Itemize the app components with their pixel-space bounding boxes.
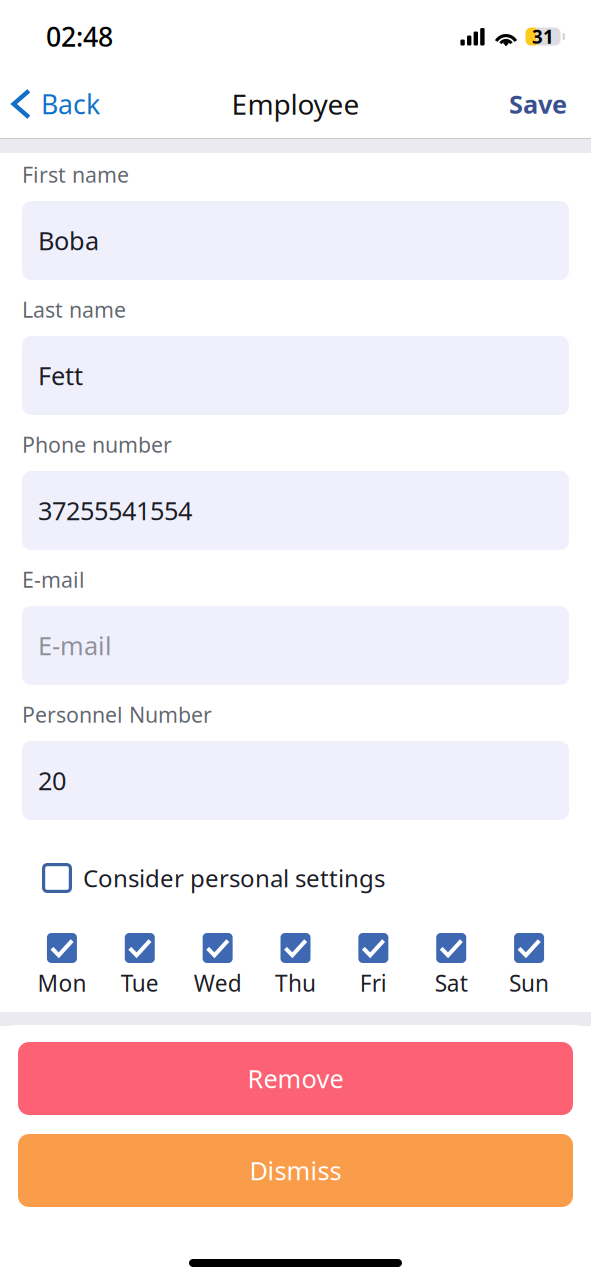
staticText: Fri — [360, 968, 387, 998]
button[interactable]: Sat — [412, 933, 490, 994]
staticText: Back — [41, 86, 100, 122]
staticText: Save — [509, 87, 567, 121]
staticText: E-mail — [22, 565, 85, 594]
staticText: Employee — [231, 85, 359, 123]
staticText: Sat — [435, 968, 468, 998]
button[interactable]: Save — [485, 76, 591, 132]
button[interactable]: Wed — [179, 933, 257, 994]
button[interactable]: Consider personal settings — [22, 863, 569, 893]
staticText: Consider personal settings — [83, 862, 385, 894]
button[interactable]: Fri — [334, 933, 412, 994]
staticText: Wed — [194, 968, 242, 998]
button[interactable]: Sun — [490, 933, 568, 994]
button[interactable]: Mon — [23, 933, 101, 994]
button[interactable]: Remove — [18, 1042, 573, 1115]
staticText: Boba — [38, 224, 99, 257]
staticText: Last name — [22, 295, 126, 324]
staticText: First name — [22, 160, 129, 189]
staticText: Remove — [247, 1062, 343, 1095]
staticText: Phone number — [22, 430, 172, 459]
staticText: Mon — [37, 968, 86, 998]
staticText: 20 — [38, 764, 66, 797]
staticText: Tue — [121, 968, 159, 998]
staticText: Thu — [275, 968, 316, 998]
staticText: Dismiss — [249, 1154, 341, 1187]
button[interactable]: Tue — [101, 933, 179, 994]
staticText: Fett — [38, 359, 83, 392]
button[interactable]: Dismiss — [18, 1134, 573, 1207]
staticText: 37255541554 — [38, 494, 192, 527]
button[interactable]: Back — [0, 76, 114, 132]
staticText: Personnel Number — [22, 700, 212, 729]
staticText: E-mail — [38, 629, 112, 662]
staticText: 02:48 — [46, 19, 113, 54]
button[interactable]: Thu — [257, 933, 334, 994]
staticText: Sun — [509, 968, 549, 998]
staticText: 31 — [532, 24, 554, 49]
